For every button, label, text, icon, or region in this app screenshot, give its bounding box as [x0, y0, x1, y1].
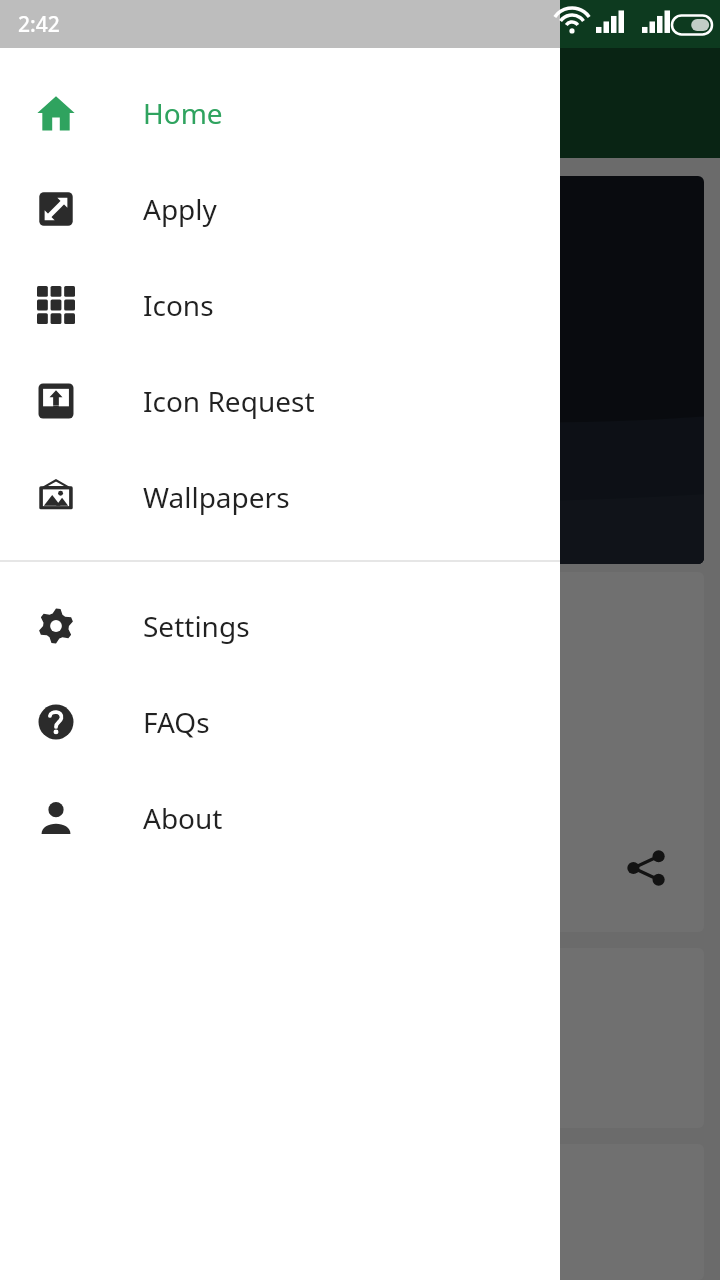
- staticText: Wallpapers: [143, 478, 290, 516]
- button[interactable]: FAQs: [0, 674, 560, 770]
- staticText: FAQs: [143, 703, 210, 741]
- button[interactable]: Wallpapers: [0, 449, 560, 545]
- staticText: 2:42: [18, 10, 60, 39]
- button[interactable]: Lorem ipsum: [16, 1144, 704, 1280]
- staticText: Icons: [143, 286, 214, 324]
- staticText: Apply: [143, 190, 217, 228]
- button[interactable]: Icon Request: [0, 353, 560, 449]
- staticText: adipiscing elit sed do descrip: [40, 681, 393, 716]
- staticText: Icon Request: [143, 382, 315, 420]
- button[interactable]: Icons: [0, 257, 560, 353]
- button[interactable]: Apply: [0, 161, 560, 257]
- button[interactable]: Home: [0, 65, 560, 161]
- button[interactable]: Share: [618, 840, 674, 896]
- staticText: Settings: [143, 607, 250, 645]
- staticText: About: [143, 799, 223, 837]
- button[interactable]: Settings: [0, 578, 560, 674]
- button[interactable]: Lorem ipsum dolor sit amet consectetur: [16, 572, 704, 932]
- button[interactable]: About: [0, 770, 560, 866]
- staticText: Lorem ipsum dolor sit amet consectetur: [40, 632, 529, 667]
- button[interactable]: Lorem ipsum development for: [16, 948, 704, 1128]
- staticText: Home: [143, 94, 223, 132]
- button[interactable]: [16, 176, 704, 564]
